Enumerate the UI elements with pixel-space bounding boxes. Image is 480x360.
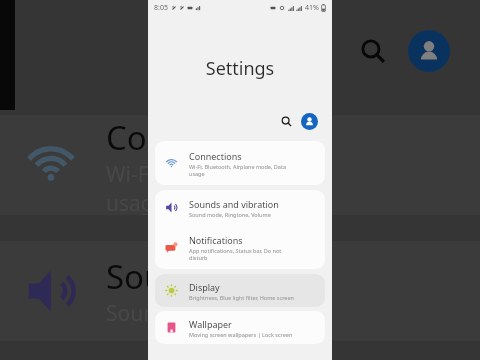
staticText: Wi-Fi, Bluetooth, Airplane mode, Data	[189, 163, 286, 170]
staticText: Display	[189, 281, 220, 293]
staticText: Brightness, Blue light filter, Home scre…	[189, 294, 294, 301]
staticText: usage	[106, 189, 166, 215]
staticText: Settings	[148, 56, 332, 81]
staticText: Notifications	[189, 234, 243, 246]
staticText: Moving screen wallpapers | Lock screen	[189, 331, 293, 338]
button[interactable]: Account	[301, 113, 318, 130]
staticText: Wi-Fi, B	[106, 160, 179, 189]
button[interactable]: Connections	[155, 141, 325, 185]
button[interactable]: Wallpaper	[155, 311, 325, 344]
staticText: Wallpaper	[189, 318, 232, 330]
button[interactable]: Display	[155, 274, 325, 307]
button[interactable]: Notifications	[155, 225, 325, 269]
staticText: usage	[189, 170, 205, 177]
staticText: Conn	[106, 115, 188, 160]
staticText: Sound mode, Ringtone, Volume	[189, 211, 271, 218]
button[interactable]: Search	[277, 112, 295, 130]
staticText: Connections	[189, 150, 242, 162]
staticText: Sounds and vibration	[189, 198, 279, 210]
staticText: 41%	[305, 3, 319, 13]
staticText: Sound	[106, 299, 170, 328]
staticText: disturb	[189, 254, 208, 261]
button[interactable]: Sounds and vibration	[155, 190, 325, 225]
staticText: 8:05	[154, 3, 168, 13]
staticText: App notifications, Status bar, Do not	[189, 247, 282, 254]
staticText: Soun	[106, 254, 185, 299]
